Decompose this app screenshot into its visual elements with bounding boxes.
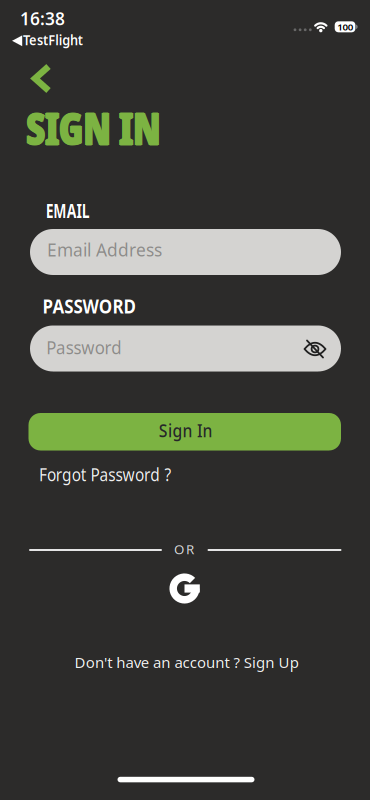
staticText: OR	[174, 540, 194, 558]
staticText: Email Address	[47, 238, 162, 261]
staticText: SIGN IN	[2, 99, 183, 157]
staticText: PASSWORD	[38, 294, 141, 319]
staticText: SIGN IN	[3, 99, 184, 157]
staticText: 100	[338, 21, 353, 33]
staticText: SIGN IN	[4, 99, 185, 157]
staticText: Sign In	[156, 419, 215, 442]
staticText: Forgot Password ?	[31, 463, 180, 486]
staticText: SIGN IN	[3, 99, 184, 158]
staticText: EMAIL	[39, 198, 97, 223]
staticText: TestFlight	[18, 30, 87, 49]
staticText: Password	[45, 336, 123, 359]
staticText: Don't have an account ? Sign Up	[77, 652, 297, 672]
staticText: 16:38	[20, 7, 65, 30]
staticText: SIGN IN	[3, 98, 184, 157]
